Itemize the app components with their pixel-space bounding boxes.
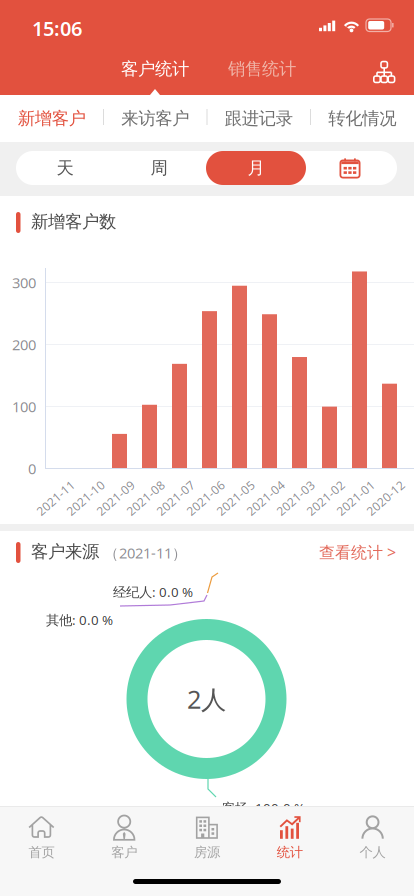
staticText: 2021-08 (122, 490, 168, 506)
staticText: 周 (150, 157, 167, 179)
staticText: 100 (12, 397, 36, 416)
button[interactable]: 客户统计 (108, 51, 202, 87)
button[interactable]: 周 (112, 151, 206, 185)
button[interactable]: 查看统计 > (306, 537, 396, 567)
button[interactable]: 跟进记录 (207, 95, 310, 142)
staticText: 2021-05 (212, 490, 258, 506)
staticText: 2021-07 (152, 490, 198, 506)
button[interactable]: 来访客户 (103, 95, 207, 142)
staticText: 客场: 100.0 % (222, 799, 305, 817)
staticText: 2021-09 (92, 490, 138, 506)
staticText: 300 (12, 273, 36, 292)
staticText: 转化情况 (328, 108, 396, 129)
button[interactable]: 月 (206, 151, 306, 185)
button[interactable]: 天 (18, 151, 112, 185)
staticText: 统计 (277, 844, 303, 860)
staticText: 其他: 0.0 % (46, 611, 113, 629)
button[interactable]: 首页 (0, 810, 83, 860)
staticText: 0 (28, 459, 36, 478)
staticText: 2021-01 (332, 490, 378, 506)
staticText: 2人 (187, 682, 226, 716)
button[interactable]: 转化情况 (310, 95, 414, 142)
staticText: 房源 (194, 844, 220, 860)
staticText: 2021-11 (32, 490, 78, 506)
staticText: 客户统计 (121, 58, 189, 80)
button[interactable]: 新增客户 (0, 95, 103, 142)
button[interactable]: 销售统计 (215, 51, 309, 87)
staticText: 2021-10 (62, 490, 108, 506)
staticText: 2021-04 (242, 490, 288, 506)
staticText: 天 (56, 157, 73, 179)
staticText: 15:06 (32, 15, 82, 42)
staticText: 2021-02 (302, 490, 348, 506)
staticText: 新增客户数 (31, 211, 116, 232)
staticText: 跟进记录 (225, 108, 293, 129)
button[interactable]: 统计 (248, 810, 331, 860)
staticText: 经纪人: 0.0 % (113, 583, 193, 601)
staticText: 2021-03 (272, 490, 318, 506)
staticText: 查看统计 > (319, 541, 396, 563)
staticText: 来访客户 (121, 108, 189, 129)
staticText: 客户 (111, 844, 137, 860)
staticText: 销售统计 (228, 58, 296, 80)
button[interactable]: 房源 (166, 810, 248, 860)
staticText: 客户来源 (31, 541, 99, 562)
staticText: 新增客户 (18, 108, 86, 129)
staticText: 200 (12, 335, 36, 354)
button[interactable]: 组织架构 (362, 52, 406, 92)
staticText: 月 (247, 157, 264, 179)
staticText: 个人 (360, 844, 386, 860)
staticText: （2021-11） (104, 543, 187, 563)
button[interactable]: 选择日期 (310, 151, 390, 185)
staticText: 2021-06 (182, 490, 228, 506)
button[interactable]: 客户 (83, 810, 166, 860)
staticText: 首页 (28, 844, 54, 860)
staticText: 2020-12 (362, 490, 408, 506)
button[interactable]: 个人 (331, 810, 414, 860)
